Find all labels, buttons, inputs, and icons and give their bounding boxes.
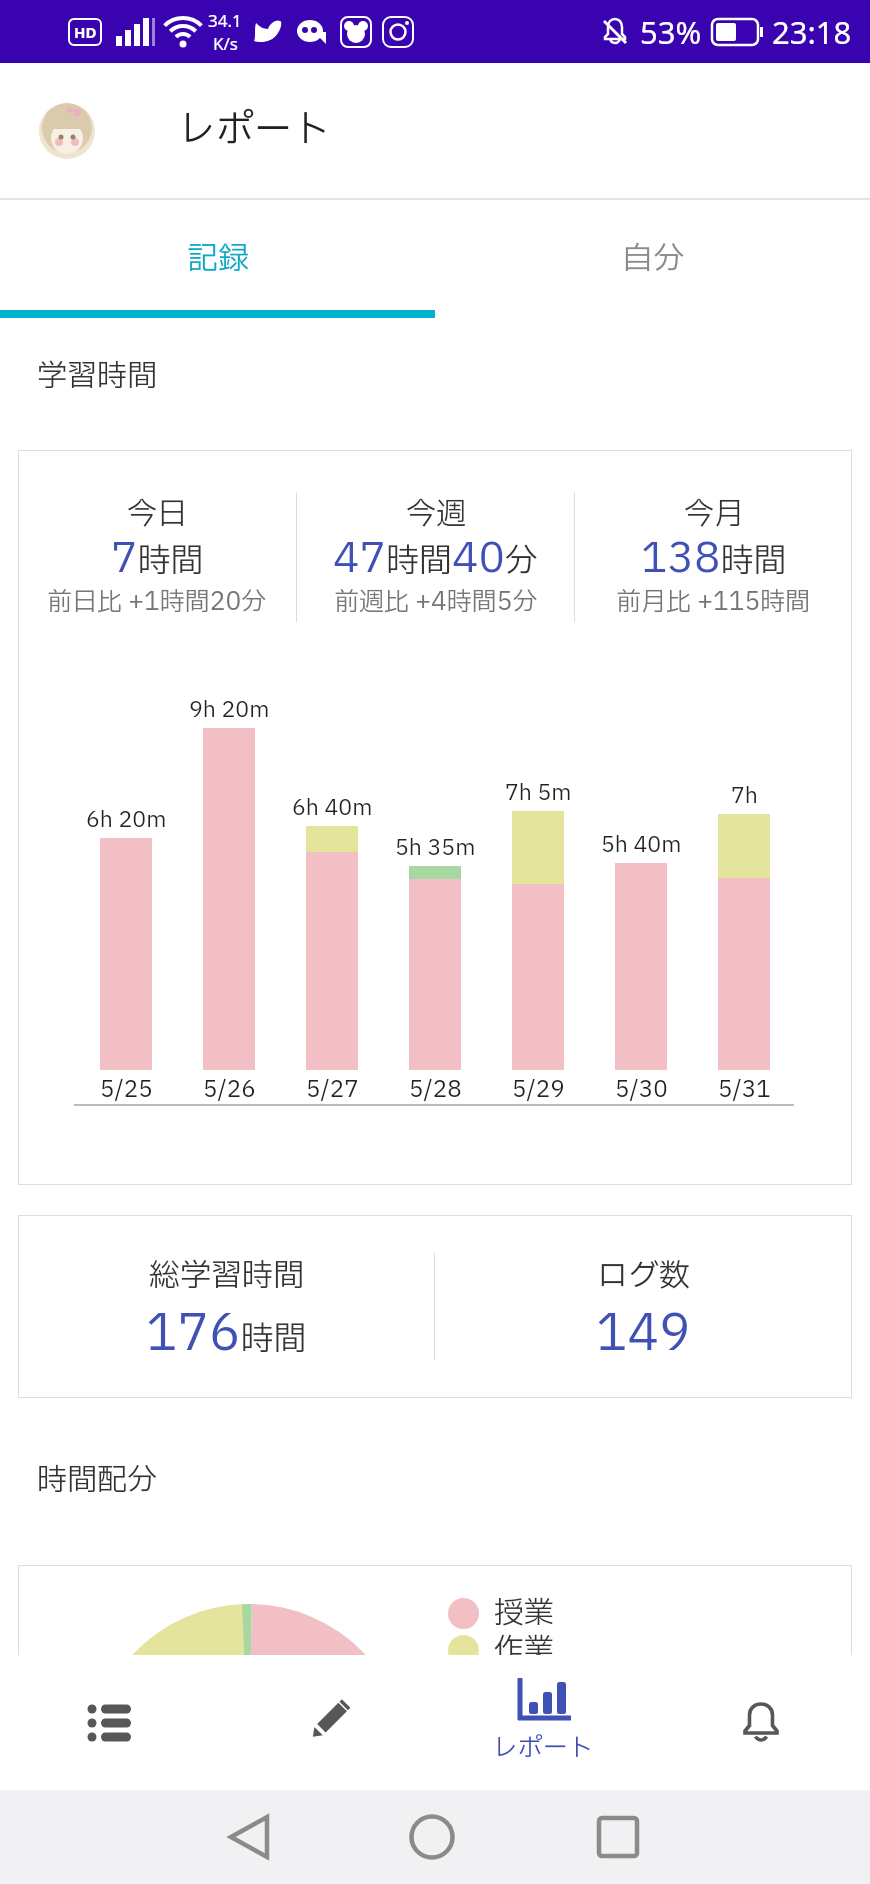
staticText: 176時間 bbox=[146, 1297, 307, 1358]
staticText: 5/27 bbox=[306, 1073, 359, 1107]
staticText: 今週 bbox=[406, 492, 466, 537]
staticText: 作業 bbox=[494, 1628, 554, 1673]
staticText: HD bbox=[74, 22, 97, 42]
staticText: 6h 40m bbox=[292, 792, 373, 825]
staticText: 5/29 bbox=[512, 1073, 565, 1107]
staticText: 5h 40m bbox=[601, 829, 682, 862]
staticText: 7h 5m bbox=[505, 777, 572, 810]
button[interactable] bbox=[0, 1655, 217, 1790]
staticText: ログ数 bbox=[597, 1253, 690, 1299]
staticText: 授業 bbox=[494, 1591, 554, 1636]
staticText: 5/30 bbox=[615, 1073, 668, 1107]
staticText: 記録 bbox=[187, 236, 249, 282]
staticText: 今日 bbox=[127, 492, 187, 537]
staticText: 5h 35m bbox=[395, 832, 476, 865]
staticText: レポート bbox=[178, 102, 331, 159]
staticText: レポート bbox=[493, 1730, 594, 1767]
staticText: 7時間 bbox=[111, 527, 204, 590]
button[interactable] bbox=[217, 1655, 434, 1790]
staticText: 5/28 bbox=[409, 1073, 462, 1107]
staticText: 7h bbox=[731, 780, 758, 813]
staticText: 総学習時間 bbox=[149, 1253, 304, 1299]
staticText: 今月 bbox=[684, 492, 744, 537]
staticText: 5/26 bbox=[203, 1073, 256, 1107]
staticText: 34.1 bbox=[208, 9, 242, 32]
button[interactable] bbox=[652, 1655, 870, 1790]
staticText: 53% bbox=[640, 11, 702, 53]
staticText: 時間配分 bbox=[37, 1458, 157, 1503]
staticText: 前月比 +115時間 bbox=[616, 584, 811, 618]
staticText: 9h 20m bbox=[189, 694, 270, 727]
button[interactable]: レポート bbox=[434, 1655, 652, 1790]
staticText: 前週比 +4時間5分 bbox=[334, 584, 538, 618]
staticText: 138時間 bbox=[641, 527, 787, 590]
staticText: 5/31 bbox=[718, 1073, 771, 1107]
staticText: 自分 bbox=[622, 236, 684, 282]
staticText: 47時間40分 bbox=[333, 527, 538, 590]
button[interactable]: 自分 bbox=[435, 200, 870, 318]
staticText: 5/25 bbox=[100, 1073, 153, 1107]
staticText: 23:18 bbox=[772, 11, 852, 53]
staticText: 6h 20m bbox=[86, 804, 167, 837]
staticText: 学習時間 bbox=[37, 354, 157, 399]
button[interactable] bbox=[39, 103, 95, 159]
staticText: 149 bbox=[596, 1297, 691, 1358]
staticText: K/s bbox=[213, 32, 238, 55]
staticText: 前日比 +1時間20分 bbox=[47, 584, 267, 618]
button[interactable]: 記録 bbox=[0, 200, 435, 318]
